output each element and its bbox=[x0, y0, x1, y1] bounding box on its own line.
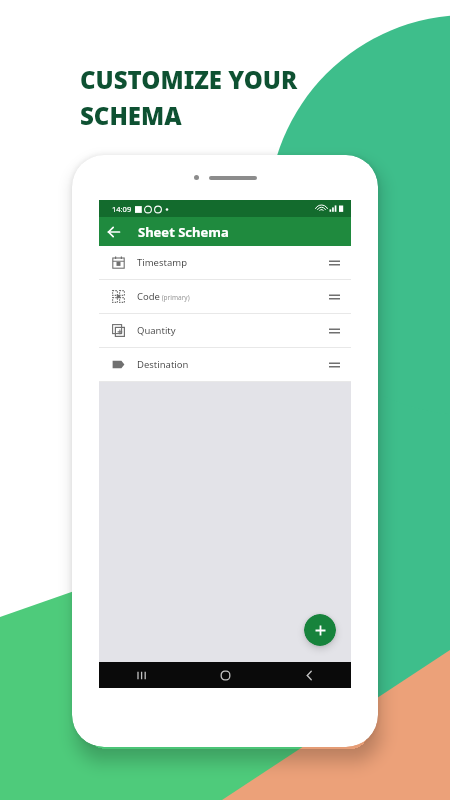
button[interactable]: Add field bbox=[304, 614, 336, 646]
button[interactable]: Home bbox=[183, 662, 267, 688]
button[interactable]: Reorder bbox=[317, 246, 351, 279]
button[interactable]: Reorder bbox=[317, 348, 351, 381]
button[interactable]: Back bbox=[99, 217, 128, 246]
staticText: Quantity bbox=[137, 324, 176, 337]
button[interactable]: Destination bbox=[99, 348, 351, 381]
staticText: SCHEMA bbox=[80, 99, 182, 132]
button[interactable]: Quantity bbox=[99, 314, 351, 347]
staticText: Destination bbox=[137, 358, 189, 371]
staticText: Timestamp bbox=[137, 256, 188, 269]
button[interactable]: Back bbox=[267, 662, 351, 688]
staticText: 14:09 bbox=[112, 204, 132, 214]
button[interactable]: Timestamp bbox=[99, 246, 351, 279]
staticText: Sheet Schema bbox=[138, 223, 229, 241]
button[interactable]: Reorder bbox=[317, 314, 351, 347]
button[interactable]: Recent apps bbox=[99, 662, 183, 688]
button[interactable]: Code (primary) bbox=[99, 280, 351, 313]
staticText: Code (primary) bbox=[137, 290, 190, 303]
staticText: CUSTOMIZE YOUR bbox=[80, 63, 298, 96]
button[interactable]: Reorder bbox=[317, 280, 351, 313]
